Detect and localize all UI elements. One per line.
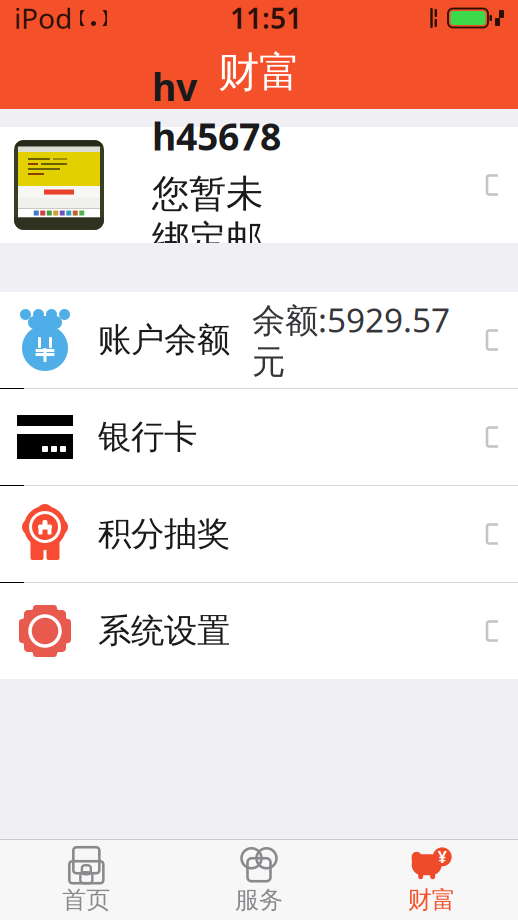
staticText: 银行卡 <box>98 416 197 457</box>
staticText: 您暂未绑定邮箱 <box>152 171 263 308</box>
button[interactable]: 首页 <box>0 840 173 920</box>
staticText: 系统设置 <box>98 610 230 651</box>
button[interactable]: 积分抽奖 <box>0 486 518 583</box>
staticText: 财富 <box>408 885 456 915</box>
staticText: 积分抽奖 <box>98 513 230 554</box>
staticText: 首页 <box>62 885 110 915</box>
staticText: 11:51 <box>230 0 302 37</box>
button[interactable]: 银行卡 <box>0 389 518 486</box>
staticText: 账户余额 <box>98 319 230 360</box>
staticText: iPod <box>14 0 72 37</box>
staticText: 服务 <box>235 885 283 915</box>
button[interactable]: 系统设置 <box>0 583 518 679</box>
button[interactable]: hv h45678 <box>0 127 518 243</box>
staticText: 余额:5929.57元 <box>252 297 450 383</box>
button[interactable]: 账户余额 <box>0 292 518 389</box>
staticText: hv h45678 <box>152 62 281 161</box>
staticText: ¥ <box>438 846 447 867</box>
staticText: 财富 <box>218 47 300 98</box>
button[interactable]: 服务 <box>173 840 345 920</box>
button[interactable]: ¥ <box>345 840 518 920</box>
